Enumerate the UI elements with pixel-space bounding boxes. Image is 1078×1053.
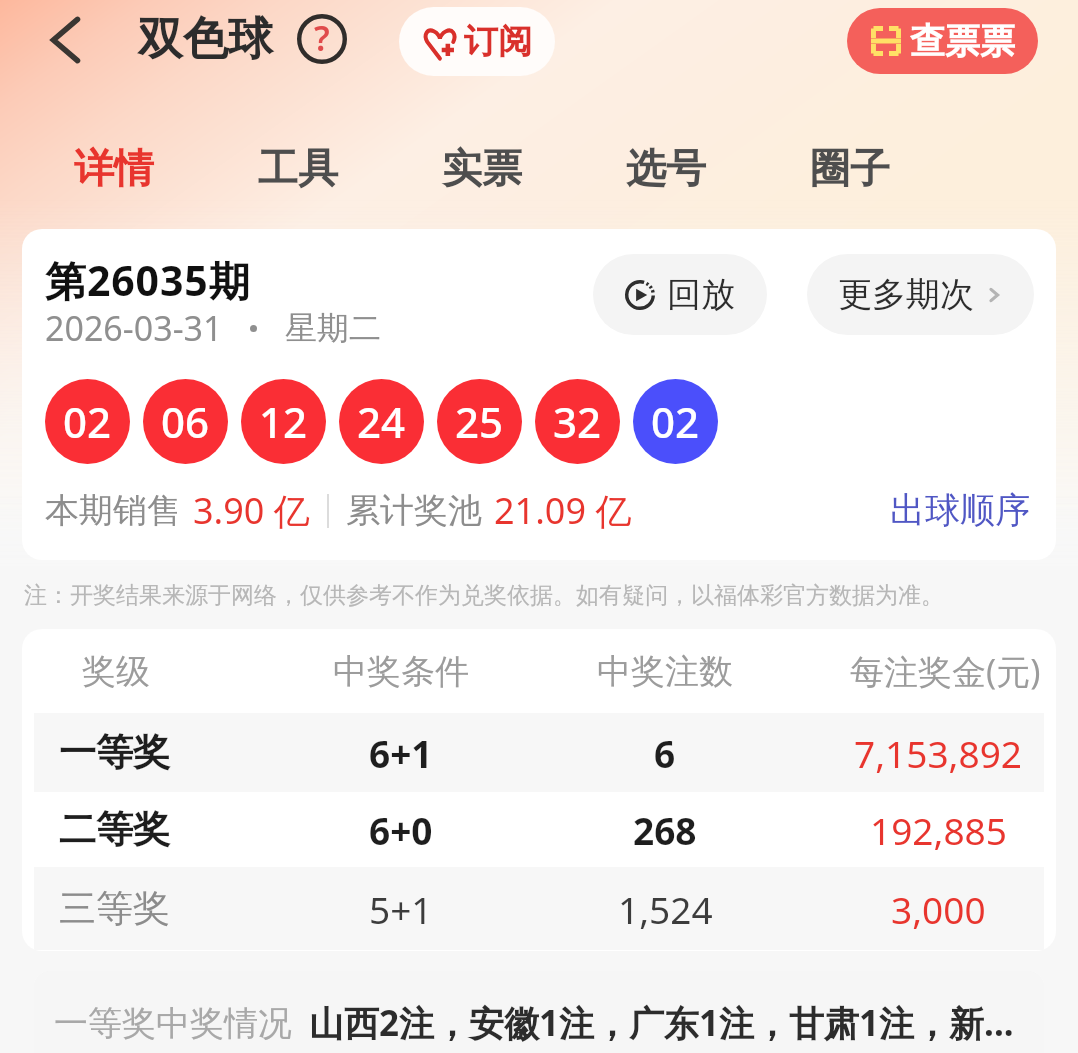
staticText: 7,153,892 xyxy=(854,728,1022,778)
button[interactable]: 回放 xyxy=(593,254,767,335)
staticText: 工具 xyxy=(258,143,338,193)
staticText: 星期二 xyxy=(285,308,381,348)
staticText: 02 xyxy=(651,393,700,450)
button[interactable]: 圈子 xyxy=(792,128,908,208)
staticText: 山西2注，安徽1注，广东1注，甘肃1注，新... xyxy=(309,999,1014,1047)
button[interactable]: 出球顺序 xyxy=(882,482,1038,538)
staticText: 第26035期 xyxy=(45,252,251,308)
staticText: 三等奖 xyxy=(59,885,170,932)
staticText: 回放 xyxy=(667,273,735,316)
staticText: 6+1 xyxy=(369,728,433,778)
staticText: 25 xyxy=(455,393,504,450)
staticText: 订阅 xyxy=(464,20,532,63)
staticText: 3,000 xyxy=(891,884,986,934)
staticText: 奖级 xyxy=(82,650,150,693)
staticText: 累计奖池 xyxy=(346,489,482,532)
button[interactable]: 实票 xyxy=(424,128,540,208)
staticText: 3.90 亿 xyxy=(193,486,310,535)
staticText: 24 xyxy=(357,393,406,450)
staticText: 12 xyxy=(259,393,308,450)
staticText: 21.09 亿 xyxy=(494,486,632,535)
staticText: 实票 xyxy=(442,143,522,193)
staticText: 1,524 xyxy=(618,884,713,934)
staticText: 一等奖 xyxy=(59,729,170,776)
staticText: 中奖条件 xyxy=(333,650,469,693)
staticText: 06 xyxy=(161,393,210,450)
staticText: 每注奖金(元) xyxy=(850,648,1041,694)
staticText: 双色球 xyxy=(138,11,273,68)
staticText: 出球顺序 xyxy=(890,488,1030,532)
staticText: 注：开奖结果来源于网络，仅供参考不作为兑奖依据。如有疑问，以福体彩官方数据为准。 xyxy=(24,581,944,610)
button[interactable]: 订阅 xyxy=(399,7,555,76)
staticText: 192,885 xyxy=(870,805,1007,855)
staticText: 一等奖中奖情况 xyxy=(54,1002,292,1045)
staticText: 32 xyxy=(553,393,602,450)
button[interactable]: 更多期次 xyxy=(807,254,1034,335)
staticText: 二等奖 xyxy=(59,806,170,853)
staticText: 6+0 xyxy=(369,805,433,855)
staticText: 2026-03-31 xyxy=(45,305,223,351)
button[interactable]: 一等奖中奖情况 xyxy=(34,971,1044,1053)
button[interactable]: 查票票 xyxy=(847,8,1038,74)
button[interactable]: Back xyxy=(33,8,97,72)
staticText: 圈子 xyxy=(810,143,890,193)
staticText: 本期销售 xyxy=(45,489,181,532)
button[interactable]: 三等奖 xyxy=(22,867,1056,950)
staticText: 选号 xyxy=(626,143,706,193)
staticText: 中奖注数 xyxy=(597,650,733,693)
button[interactable]: 奖级 xyxy=(22,629,1056,713)
staticText: 更多期次 xyxy=(838,273,974,316)
button[interactable]: Help xyxy=(290,7,354,71)
button[interactable]: 详情 xyxy=(56,128,172,208)
staticText: 02 xyxy=(63,393,112,450)
staticText: 详情 xyxy=(74,143,154,193)
staticText: 268 xyxy=(633,805,697,855)
staticText: 5+1 xyxy=(369,884,433,934)
staticText: 查票票 xyxy=(910,19,1015,63)
button[interactable]: 一等奖 xyxy=(22,713,1056,792)
button[interactable]: 工具 xyxy=(240,128,356,208)
staticText: 6 xyxy=(654,728,676,778)
button[interactable]: 选号 xyxy=(608,128,724,208)
staticText: ? xyxy=(314,15,330,61)
button[interactable]: 二等奖 xyxy=(22,792,1056,867)
